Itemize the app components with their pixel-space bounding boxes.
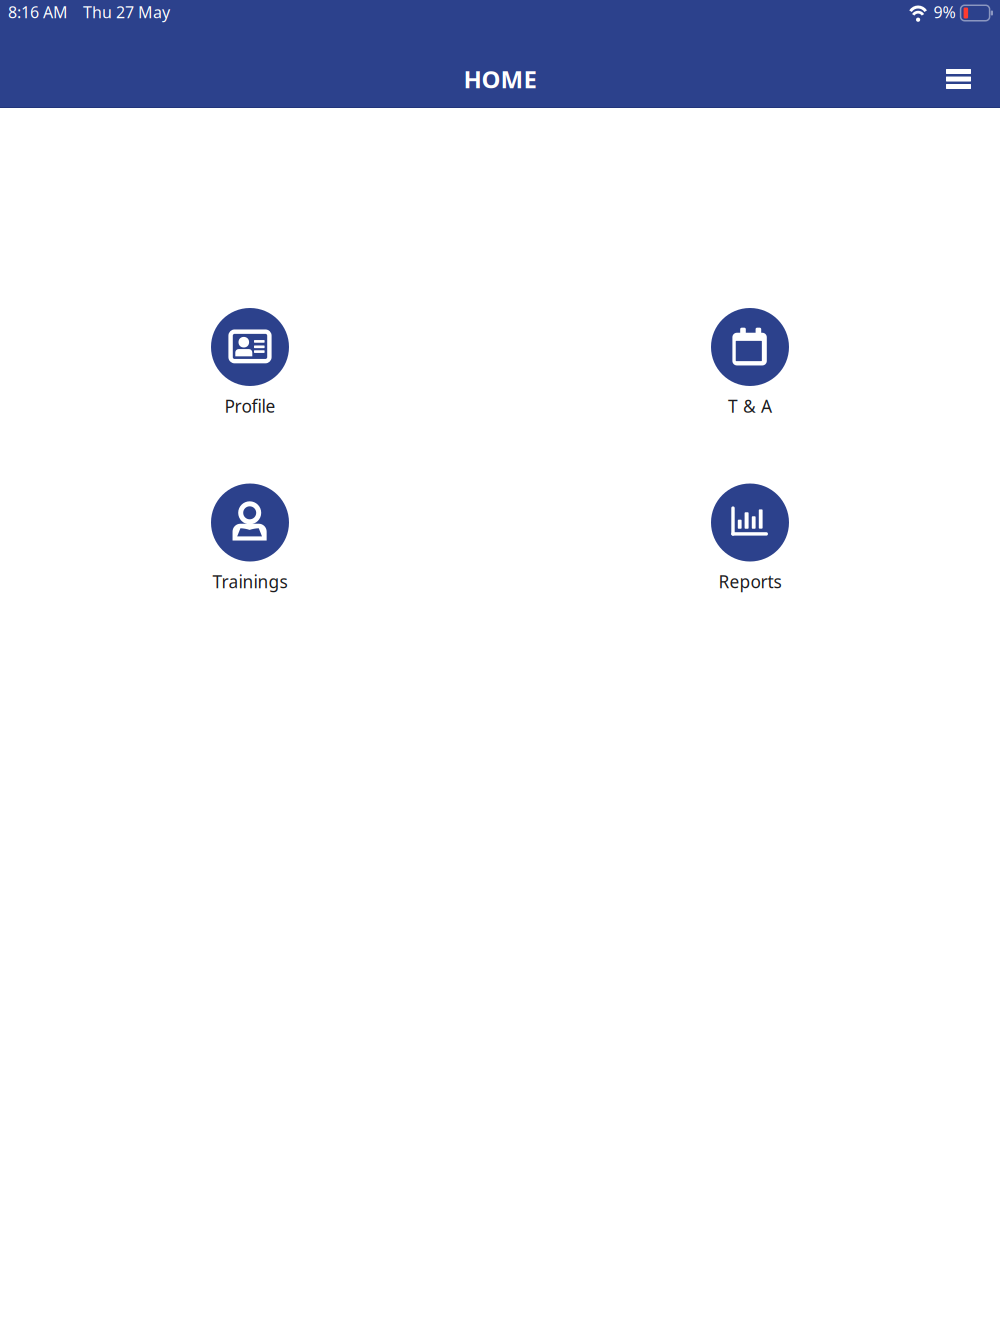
staticText: 8:16 AM [8,1,68,23]
button[interactable]: Reports [640,483,860,593]
staticText: 9% [934,1,956,23]
button[interactable]: Profile [140,308,360,417]
staticText: Trainings [212,570,287,593]
staticText: Thu 27 May [83,1,170,23]
staticText: Profile [224,394,275,417]
button[interactable]: Trainings [140,483,360,593]
button[interactable]: Menu [930,55,987,103]
staticText: T & A [728,394,772,417]
button[interactable]: T & A [640,308,860,417]
staticText: HOME [463,63,536,95]
staticText: Reports [718,570,781,593]
